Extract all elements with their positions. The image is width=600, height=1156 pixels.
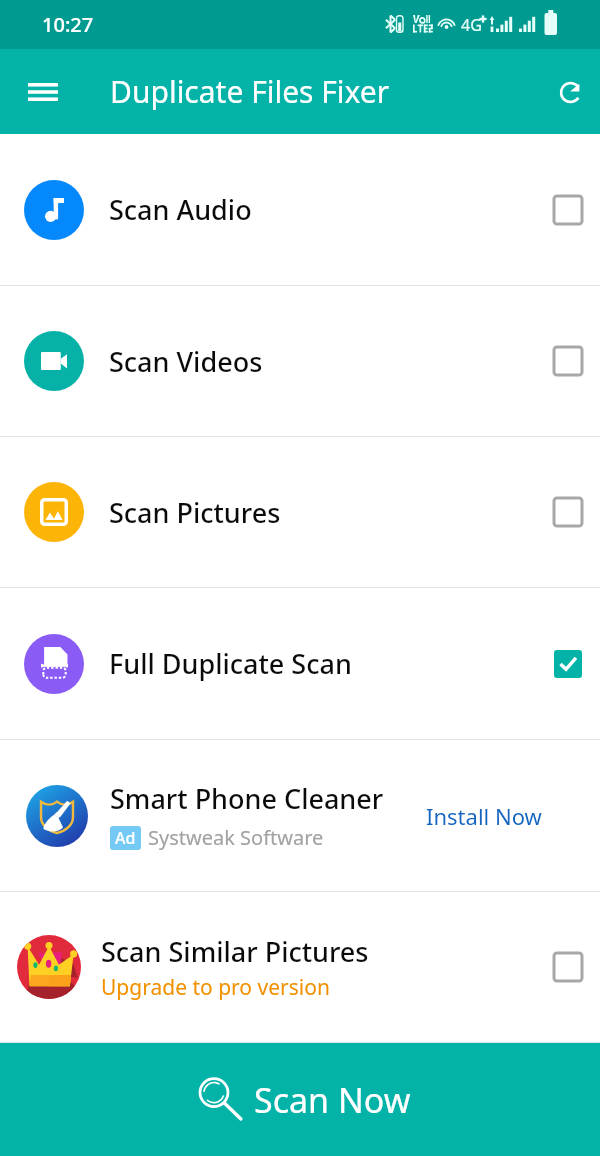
- staticText: Install Now: [426, 801, 542, 831]
- staticText: Scan Now: [254, 1077, 411, 1123]
- button[interactable]: Scan Audio: [0, 134, 600, 285]
- button[interactable]: Scan Videos: [0, 286, 600, 436]
- button[interactable]: Toggle selection: [540, 939, 596, 995]
- button[interactable]: Open navigation menu: [8, 57, 78, 127]
- staticText: 4G: [461, 14, 482, 36]
- staticText: 10:27: [42, 11, 94, 38]
- button[interactable]: Toggle selection: [540, 636, 596, 692]
- staticText: Scan Videos: [109, 343, 263, 380]
- staticText: Duplicate Files Fixer: [110, 71, 390, 112]
- staticText: Smart Phone Cleaner: [110, 780, 384, 817]
- button[interactable]: Scan Similar Pictures: [0, 892, 600, 1042]
- button[interactable]: Refresh: [540, 62, 600, 122]
- button[interactable]: Toggle selection: [540, 484, 596, 540]
- staticText: Systweak Software: [148, 824, 324, 851]
- button[interactable]: Install Now: [396, 789, 600, 843]
- button[interactable]: Scan Now: [0, 1043, 600, 1156]
- button[interactable]: Smart Phone Cleaner: [0, 740, 600, 891]
- button[interactable]: Scan Pictures: [0, 437, 600, 587]
- staticText: Upgrade to pro version: [101, 973, 330, 1002]
- button[interactable]: Full Duplicate Scan: [0, 588, 600, 739]
- button[interactable]: Toggle selection: [540, 333, 596, 389]
- staticText: Full Duplicate Scan: [109, 645, 352, 682]
- button[interactable]: Toggle selection: [540, 182, 596, 238]
- staticText: Ad: [115, 827, 136, 849]
- staticText: Scan Similar Pictures: [101, 933, 369, 970]
- staticText: Scan Audio: [109, 191, 252, 228]
- staticText: Scan Pictures: [109, 494, 281, 531]
